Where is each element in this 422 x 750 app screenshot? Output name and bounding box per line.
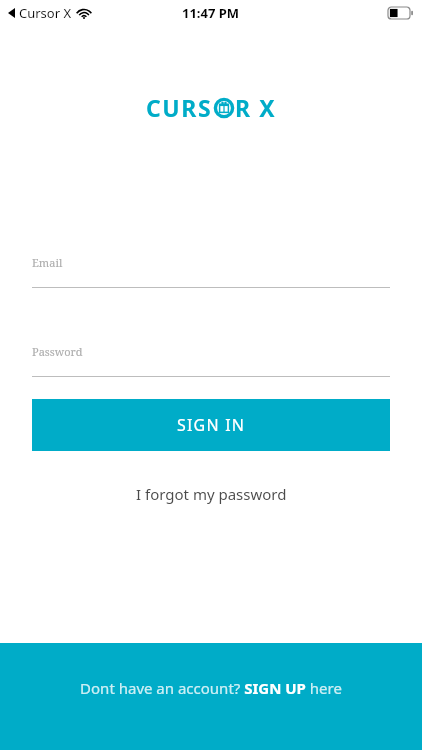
staticText: R X [235, 92, 277, 123]
staticText: Cursor X [19, 4, 72, 22]
staticText: Email [32, 255, 63, 270]
button[interactable]: I forgot my password [32, 477, 390, 511]
staticText: CURS [146, 92, 213, 123]
staticText: Password [32, 344, 83, 359]
staticText: Dont have an account? SIGN UP here [80, 678, 342, 698]
staticText: I forgot my password [136, 484, 287, 504]
button[interactable]: Dont have an account? SIGN UP here [0, 643, 422, 750]
staticText: SIGN IN [177, 414, 246, 436]
staticText: 11:47 PM [182, 4, 240, 22]
button[interactable]: SIGN IN [32, 399, 390, 451]
